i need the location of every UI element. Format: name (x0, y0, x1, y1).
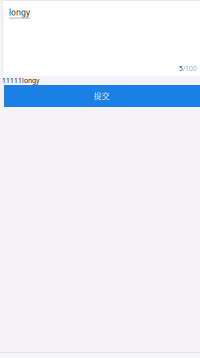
staticText: 5 (179, 64, 183, 73)
staticText: longy (9, 7, 30, 18)
staticText: 11111longy (2, 76, 39, 85)
button[interactable]: 提交 (4, 85, 200, 107)
button[interactable]: Message text field, 5 of 100 characters (0, 0, 200, 76)
staticText: /100 (183, 64, 197, 73)
staticText: 提交 (94, 91, 110, 101)
